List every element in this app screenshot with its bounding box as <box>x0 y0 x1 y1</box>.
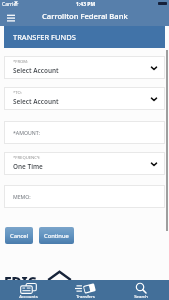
staticText: TRANSFER FUNDS <box>13 32 76 42</box>
button[interactable]: Transfers <box>57 280 113 300</box>
button[interactable]: *FREQUENCY: <box>4 152 165 175</box>
staticText: *FREQUENCY: <box>13 155 41 161</box>
staticText: Continue <box>44 232 69 240</box>
staticText: Carrollton Federal Bank <box>42 11 128 21</box>
staticText: MEMO: <box>13 193 31 200</box>
staticText: *TO: <box>13 90 22 96</box>
staticText: Select Account <box>13 97 59 106</box>
staticText: Transfers <box>76 293 95 299</box>
button[interactable]: Search <box>113 280 169 300</box>
staticText: Carrier <box>2 1 19 8</box>
staticText: Accounts <box>19 293 38 299</box>
staticText: Search <box>134 293 148 299</box>
button[interactable]: Cancel <box>5 227 33 244</box>
button[interactable]: Menu <box>3 9 19 25</box>
staticText: 1:43 PM <box>76 1 96 8</box>
staticText: Cancel <box>10 232 29 240</box>
button[interactable]: Accounts <box>0 280 57 300</box>
button[interactable]: TRANSFER FUNDS <box>4 26 165 48</box>
staticText: One Time <box>13 162 43 171</box>
button[interactable]: *FROM: <box>4 56 165 79</box>
button[interactable]: Continue <box>39 227 74 244</box>
button[interactable]: *AMOUNT: <box>4 121 165 144</box>
staticText: FDIC <box>4 272 37 291</box>
button[interactable]: *TO: <box>4 87 165 110</box>
staticText: *AMOUNT: <box>13 129 40 136</box>
staticText: *FROM: <box>13 59 29 65</box>
button[interactable]: MEMO: <box>4 185 165 208</box>
staticText: Select Account <box>13 66 59 75</box>
